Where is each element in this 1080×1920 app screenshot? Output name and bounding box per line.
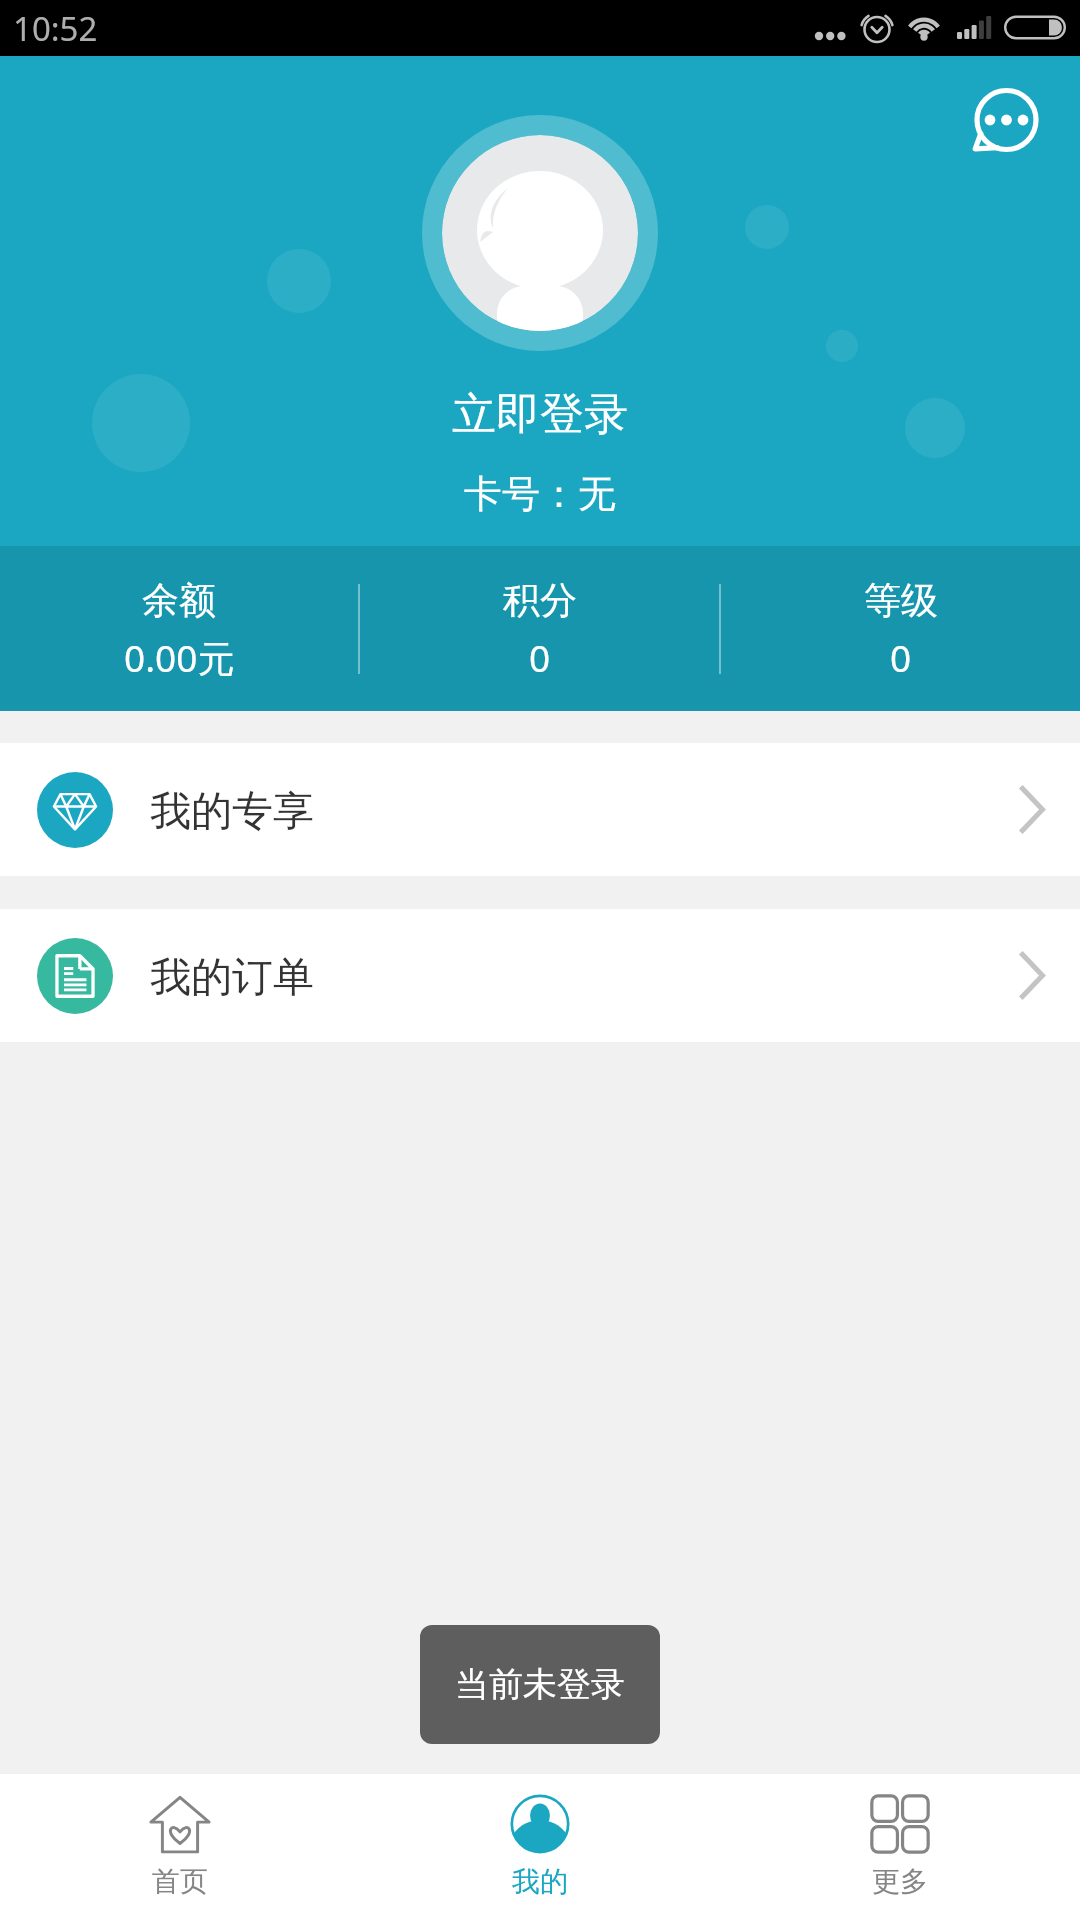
staticText: 首页 [152, 1864, 208, 1899]
staticText: 卡号：无 [464, 470, 616, 518]
staticText: 0.00元 [124, 632, 235, 683]
button[interactable]: 当前未登录 [420, 1625, 660, 1744]
staticText: 更多 [872, 1864, 928, 1899]
staticText: 立即登录 [452, 387, 628, 442]
staticText: 积分 [503, 577, 577, 624]
staticText: 余额 [142, 577, 216, 624]
staticText: 当前未登录 [455, 1663, 625, 1706]
staticText: 我的专享 [150, 786, 314, 838]
button[interactable]: 我的订单 [0, 909, 1080, 1042]
button[interactable]: 更多 [720, 1774, 1080, 1920]
staticText: 我的 [512, 1864, 568, 1899]
button[interactable]: Messages [955, 71, 1055, 171]
button[interactable]: 我的 [360, 1774, 720, 1920]
button[interactable]: 我的专享 [0, 743, 1080, 876]
staticText: 我的订单 [150, 952, 314, 1004]
staticText: 0 [529, 632, 551, 682]
button[interactable]: 首页 [0, 1774, 360, 1920]
staticText: 0 [890, 632, 912, 682]
staticText: 10:52 [13, 6, 98, 51]
staticText: 等级 [864, 577, 938, 624]
